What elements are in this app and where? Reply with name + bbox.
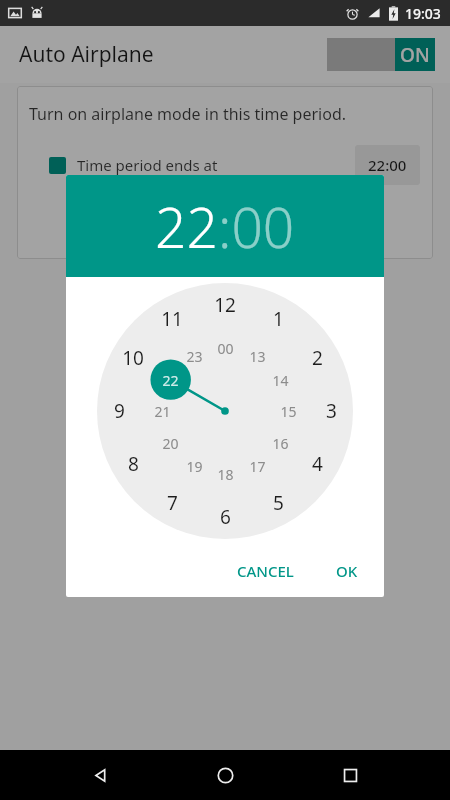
staticText: Time period ends at [77,155,218,175]
button[interactable]: 15 [280,402,297,421]
button[interactable]: 3 [326,398,337,424]
staticText: Turn on airplane mode in this time perio… [29,103,347,125]
button[interactable]: 17 [249,457,266,476]
button[interactable]: CANCEL [227,552,304,590]
button[interactable]: 22:00 [355,145,420,185]
staticText: 19:03 [405,4,441,23]
staticText: 19 [186,457,203,476]
button[interactable]: :00 [218,189,295,264]
staticText: 8 [128,451,139,477]
staticText: 18 [217,465,234,484]
staticText: 5 [273,490,284,516]
staticText: 1 [273,306,284,332]
button[interactable] [49,157,66,174]
staticText: CANCEL [237,561,294,581]
staticText: 9 [114,398,125,424]
staticText: 4 [312,451,323,477]
staticText: Auto Airplane [19,40,154,69]
button[interactable]: 4 [312,451,323,477]
button[interactable]: 14 [272,371,289,390]
button[interactable]: 1 [273,306,284,332]
button[interactable]: 8 [128,451,139,477]
staticText: 3 [326,398,337,424]
staticText: 10 [122,345,144,371]
button[interactable]: 13 [249,347,266,366]
button[interactable]: Home [200,750,250,800]
button[interactable]: 5 [273,490,284,516]
button[interactable]: Back [75,750,125,800]
button[interactable]: OK [326,552,368,590]
button[interactable]: 2 [312,345,323,371]
button[interactable]: 18 [217,465,234,484]
button[interactable]: 16 [272,434,289,453]
button[interactable]: 20 [162,434,179,453]
staticText: 2 [312,345,323,371]
staticText: 16 [272,434,289,453]
staticText: 21 [154,402,171,421]
button[interactable]: ON [327,38,435,71]
staticText: 7 [167,490,178,516]
button[interactable]: 10 [122,345,144,371]
button[interactable]: 23 [186,347,203,366]
staticText: 11 [161,306,183,332]
button[interactable]: 22 [155,189,218,264]
button[interactable]: 21 [154,402,171,421]
staticText: OK [336,561,358,581]
button[interactable]: 22 [162,371,179,390]
staticText: 12 [214,292,236,318]
button[interactable]: 6 [220,504,231,530]
staticText: 00 [217,339,234,358]
button[interactable]: 11 [161,306,183,332]
staticText: 13 [249,347,266,366]
button[interactable]: 00 [217,339,234,358]
button[interactable]: 7 [167,490,178,516]
staticText: 23 [186,347,203,366]
staticText: ON [400,42,430,68]
staticText: 14 [272,371,289,390]
button[interactable]: 19 [186,457,203,476]
button[interactable]: Recent apps [325,750,375,800]
button[interactable]: 12 [214,292,236,318]
staticText: 22 [162,371,179,390]
staticText: 22:00 [368,155,407,175]
staticText: 6 [220,504,231,530]
staticText: 17 [249,457,266,476]
button[interactable]: 9 [114,398,125,424]
staticText: 20 [162,434,179,453]
staticText: 15 [280,402,297,421]
